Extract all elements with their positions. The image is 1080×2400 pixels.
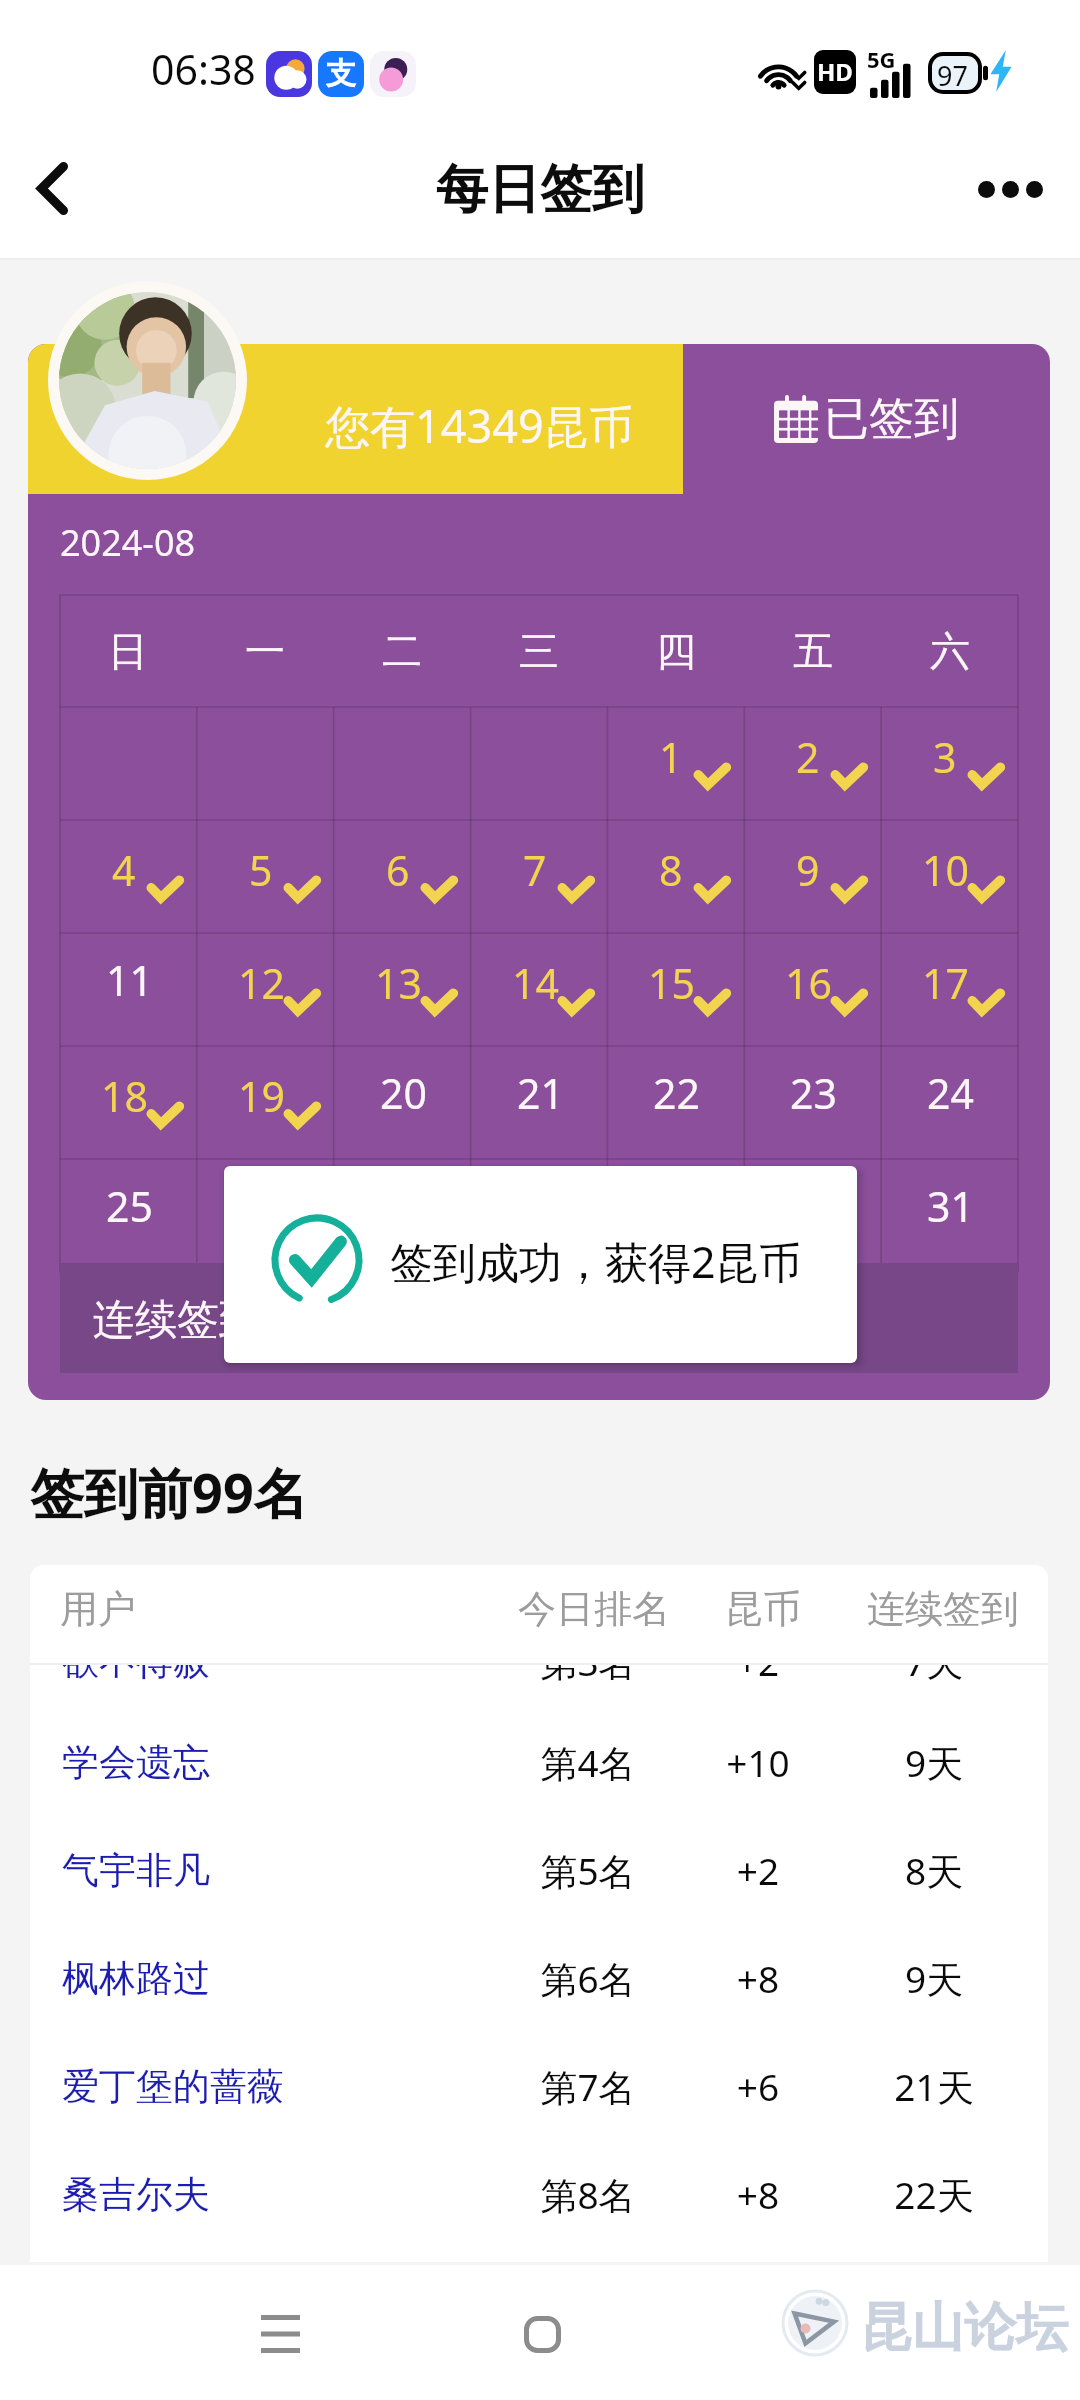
staticText: 25 [106, 1178, 153, 1234]
staticText: 三 [519, 626, 559, 676]
staticText: +10 [690, 1737, 826, 1787]
staticText: 1 [659, 729, 683, 785]
staticText: 一 [245, 626, 285, 676]
staticText: 21天 [858, 2061, 1010, 2112]
staticText: 爱丁堡的蔷薇 [62, 2063, 284, 2110]
button[interactable]: 欲不得赦 [30, 1607, 1048, 1715]
button[interactable]: 爱丁堡的蔷薇 [30, 2032, 1048, 2140]
staticText: 用户 [60, 1585, 136, 1633]
staticText: 18 [101, 1068, 148, 1124]
button[interactable]: 学会遗忘 [30, 1708, 1048, 1816]
staticText: 24 [927, 1065, 974, 1121]
staticText: 已签到 [824, 391, 959, 448]
staticText: 每日签到 [436, 157, 644, 223]
staticText: +6 [690, 2061, 826, 2111]
staticText: 2 [796, 729, 820, 785]
staticText: 14 [512, 955, 559, 1011]
button[interactable]: 桑吉尔夫 [30, 2140, 1048, 2248]
staticText: 17 [922, 955, 969, 1011]
staticText: 20 [380, 1065, 427, 1121]
staticText: 第3名 [498, 1636, 678, 1687]
button[interactable]: 枫林路过 [30, 1924, 1048, 2032]
staticText: 连续签到 [867, 1585, 1019, 1633]
staticText: 22 [653, 1065, 700, 1121]
staticText: 昆币 [725, 1585, 801, 1633]
staticText: 第8名 [498, 2169, 678, 2220]
staticText: +8 [690, 1953, 826, 2003]
staticText: 桑吉尔夫 [62, 2171, 210, 2218]
staticText: HD [817, 55, 853, 88]
staticText: 六 [930, 626, 970, 676]
staticText: 11 [106, 952, 153, 1008]
button[interactable]: Menu [220, 2279, 340, 2389]
staticText: 15 [648, 955, 695, 1011]
staticText: 06:38 [151, 41, 256, 97]
staticText: 97 [937, 57, 968, 94]
button[interactable]: Back [2, 138, 102, 238]
button[interactable]: 气宇非凡 [30, 1816, 1048, 1924]
staticText: +2 [690, 1636, 826, 1686]
staticText: 昆山论坛 [860, 2295, 1068, 2361]
staticText: 4 [112, 842, 136, 898]
staticText: 8天 [858, 1845, 1010, 1896]
staticText: 气宇非凡 [62, 1847, 210, 1894]
staticText: 五 [793, 626, 833, 676]
staticText: +8 [690, 2169, 826, 2219]
staticText: 2024-08 [60, 518, 196, 567]
staticText: 23 [790, 1065, 837, 1121]
staticText: 今日排名 [518, 1585, 670, 1633]
staticText: 9 [796, 842, 820, 898]
staticText: 3 [933, 729, 957, 785]
staticText: 第5名 [498, 1845, 678, 1896]
staticText: 欲不得赦 [62, 1638, 210, 1685]
staticText: 22天 [858, 2169, 1010, 2220]
staticText: 12 [238, 955, 285, 1011]
staticText: 连续签到 2 天 [93, 1289, 349, 1346]
staticText: +2 [690, 1845, 826, 1895]
staticText: 9天 [858, 1737, 1010, 1788]
button[interactable]: More options [951, 134, 1069, 244]
button[interactable]: 已签到 [683, 344, 1050, 494]
staticText: 日 [108, 626, 148, 676]
staticText: 8 [659, 842, 683, 898]
staticText: 签到前99名 [30, 1455, 308, 1529]
staticText: 6 [386, 842, 410, 898]
button[interactable]: Home [482, 2279, 602, 2389]
staticText: 学会遗忘 [62, 1739, 210, 1786]
staticText: 第4名 [498, 1737, 678, 1788]
staticText: 7天 [858, 1636, 1010, 1687]
staticText: 第6名 [498, 1953, 678, 2004]
staticText: 31 [927, 1178, 974, 1234]
staticText: 26 [243, 1178, 290, 1234]
staticText: 支 [326, 55, 356, 93]
staticText: 二 [382, 626, 422, 676]
staticText: 签到成功，获得2昆币 [390, 1232, 802, 1291]
staticText: 您有14349昆币 [325, 395, 634, 456]
staticText: 9天 [858, 1953, 1010, 2004]
staticText: 四 [656, 626, 696, 676]
staticText: 7 [523, 842, 547, 898]
staticText: 5G [867, 44, 896, 74]
staticText: 5 [249, 842, 273, 898]
staticText: 10 [922, 842, 969, 898]
staticText: 第7名 [498, 2061, 678, 2112]
staticText: 19 [238, 1068, 285, 1124]
staticText: 16 [785, 955, 832, 1011]
staticText: 枫林路过 [62, 1955, 210, 2002]
staticText: 13 [375, 955, 422, 1011]
staticText: 21 [517, 1065, 564, 1121]
